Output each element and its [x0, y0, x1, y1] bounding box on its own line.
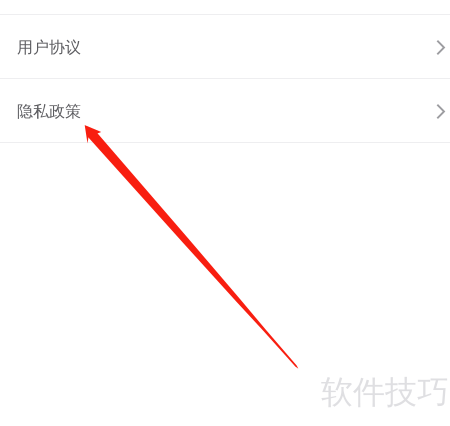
staticText: 软件技巧 — [321, 373, 449, 412]
staticText: 隐私政策 — [17, 102, 81, 121]
staticText: 用户协议 — [17, 38, 81, 57]
button[interactable]: 用户协议 — [0, 15, 450, 78]
button[interactable]: 隐私政策 — [0, 79, 450, 142]
